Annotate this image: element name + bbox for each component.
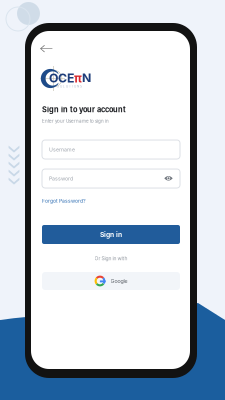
staticText: Username (49, 146, 75, 153)
staticText: Google (110, 278, 127, 284)
staticText: Password (49, 175, 73, 182)
button[interactable]: Back (31, 31, 190, 369)
staticText: Sign in (100, 230, 122, 239)
button[interactable]: Google (31, 31, 190, 369)
staticText: Enter your Username to sign in (42, 118, 109, 124)
button[interactable]: Sign in (31, 31, 190, 369)
staticText: N (82, 71, 91, 85)
button[interactable]: Forgot Password? (31, 31, 190, 369)
staticText: S O L U T I O N S (57, 85, 82, 88)
staticText: Or Sign in with (94, 255, 127, 261)
staticText: OCE (49, 71, 74, 85)
staticText: Forgot Password? (42, 198, 86, 204)
staticText: π (74, 71, 82, 85)
staticText: Sign in to your account (42, 105, 126, 114)
